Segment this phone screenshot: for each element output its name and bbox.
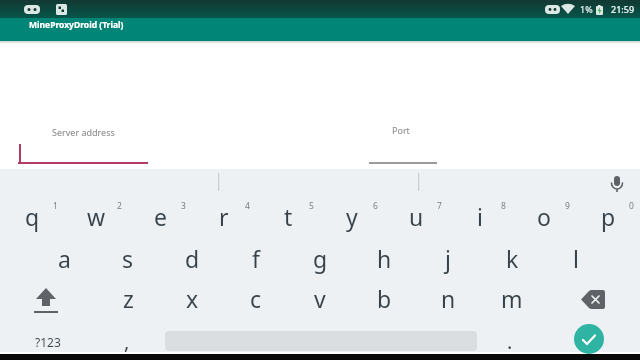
button[interactable]: z [97, 279, 159, 318]
button[interactable]: b [353, 279, 415, 318]
staticText: 21:59 [611, 3, 635, 15]
button[interactable]: h [353, 239, 415, 278]
staticText: p [601, 201, 616, 232]
staticText: i [477, 201, 483, 232]
button[interactable]: y [321, 197, 383, 236]
button[interactable]: n [417, 279, 479, 318]
staticText: 1 [53, 200, 58, 212]
staticText: t [284, 201, 293, 232]
staticText: 0 [629, 200, 634, 212]
button[interactable]: e [129, 197, 191, 236]
staticText: h [377, 243, 392, 274]
button[interactable]: w [65, 197, 127, 236]
button[interactable]: . [485, 325, 535, 358]
staticText: 8 [501, 200, 506, 212]
staticText: . [507, 328, 513, 355]
staticText: 7 [437, 200, 442, 212]
staticText: w [87, 201, 106, 232]
staticText: 1% [580, 3, 593, 15]
staticText: d [185, 243, 200, 274]
button[interactable]: MineProxyDroid (Trial) [16, 18, 216, 41]
button[interactable] [552, 280, 632, 319]
staticText: b [377, 283, 392, 314]
staticText: Port [392, 124, 410, 136]
staticText: f [252, 243, 260, 274]
staticText: c [250, 283, 262, 314]
button[interactable]: i [449, 197, 511, 236]
staticText: j [445, 243, 451, 274]
button[interactable]: ?123 [8, 325, 88, 358]
button[interactable] [18, 144, 148, 165]
button[interactable]: , [102, 325, 152, 358]
button[interactable]: k [481, 239, 543, 278]
button[interactable]: p [577, 197, 639, 236]
staticText: r [219, 201, 229, 232]
staticText: x [186, 283, 199, 314]
button[interactable]: a [33, 239, 95, 278]
button[interactable]: x [161, 279, 223, 318]
button[interactable]: g [289, 239, 351, 278]
button[interactable]: t [257, 197, 319, 236]
button[interactable] [574, 324, 604, 354]
staticText: 4 [245, 200, 250, 212]
button[interactable]: u [385, 197, 447, 236]
staticText: q [25, 201, 40, 232]
staticText: s [122, 243, 134, 274]
button[interactable]: l [545, 239, 607, 278]
staticText: m [501, 283, 523, 314]
staticText: 6 [373, 200, 378, 212]
staticText: k [506, 243, 519, 274]
staticText: z [123, 283, 134, 314]
button[interactable]: q [1, 197, 63, 236]
button[interactable]: d [161, 239, 223, 278]
button[interactable]: v [289, 279, 351, 318]
staticText: l [573, 243, 579, 274]
staticText: g [313, 243, 328, 274]
button[interactable] [8, 280, 88, 319]
staticText: u [409, 201, 424, 232]
button[interactable]: j [417, 239, 479, 278]
button[interactable]: s [97, 239, 159, 278]
button[interactable]: m [481, 279, 543, 318]
button[interactable] [369, 144, 437, 165]
staticText: ?123 [35, 334, 61, 350]
staticText: e [154, 201, 167, 232]
staticText: y [346, 201, 358, 232]
staticText: 3 [181, 200, 186, 212]
button[interactable]: o [513, 197, 575, 236]
staticText: MineProxyDroid (Trial) [29, 19, 124, 31]
staticText: , [124, 328, 130, 355]
button[interactable]: r [193, 197, 255, 236]
button[interactable]: f [225, 239, 287, 278]
button[interactable]: c [225, 279, 287, 318]
staticText: n [441, 283, 456, 314]
staticText: v [314, 283, 326, 314]
staticText: 9 [565, 200, 570, 212]
staticText: a [58, 243, 71, 274]
staticText: 2 [117, 200, 122, 212]
staticText: Server address [52, 126, 115, 138]
staticText: o [537, 201, 551, 232]
staticText: 5 [309, 200, 314, 212]
